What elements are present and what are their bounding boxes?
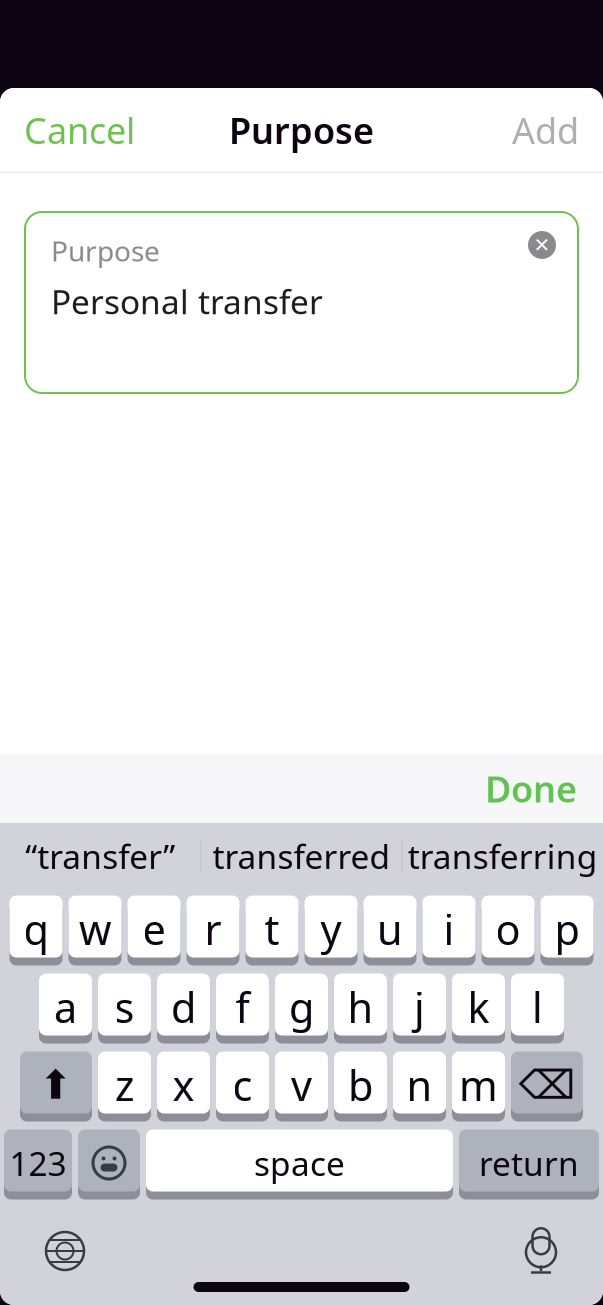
staticText: y [320,902,341,956]
button[interactable]: Delete [511,1054,583,1119]
button[interactable]: i [422,898,475,963]
staticText: space [254,1141,345,1185]
button[interactable]: r [186,898,239,963]
button[interactable]: h [334,976,387,1041]
staticText: k [467,980,489,1034]
staticText: z [115,1058,134,1112]
staticText: p [554,902,579,956]
button[interactable]: w [68,898,121,963]
staticText: n [406,1058,432,1112]
button[interactable]: z [98,1054,151,1119]
staticText: l [532,980,543,1034]
button[interactable]: Dictation [499,1223,583,1279]
staticText: t [264,902,279,956]
staticText: Personal transfer [51,279,323,323]
staticText: u [377,902,403,956]
staticText: transferred [212,834,390,878]
staticText: s [114,980,134,1034]
staticText: ⌫ [518,1062,575,1108]
staticText: b [348,1058,373,1112]
button[interactable]: Numbers [4,1132,72,1197]
staticText: Purpose [229,106,374,154]
staticText: 123 [9,1141,66,1185]
button[interactable]: x [157,1054,210,1119]
button[interactable]: l [511,976,564,1041]
staticText: g [289,980,314,1034]
staticText: i [443,902,454,956]
button[interactable]: d [157,976,210,1041]
staticText: x [172,1058,194,1112]
button[interactable]: space [146,1132,453,1197]
staticText: j [414,980,425,1034]
staticText: Add [512,106,579,154]
button[interactable]: Add [488,94,603,166]
staticText: Purpose [51,232,160,269]
button[interactable]: j [393,976,446,1041]
button[interactable]: Next keyboard [20,1223,110,1279]
staticText: m [459,1058,498,1112]
staticText: d [171,980,196,1034]
staticText: transferring [408,834,598,878]
button[interactable]: Shift [20,1054,92,1119]
staticText: o [495,902,520,956]
button[interactable]: q [9,898,62,963]
staticText: f [235,980,249,1034]
button[interactable]: transferred [201,823,402,889]
button[interactable]: n [393,1054,446,1119]
button[interactable]: Done [459,751,603,826]
button[interactable]: Return [459,1132,599,1197]
button[interactable]: “transfer” [0,823,200,889]
button[interactable]: m [452,1054,505,1119]
staticText: w [79,902,111,956]
button[interactable]: g [275,976,328,1041]
button[interactable]: t [245,898,298,963]
staticText: a [54,980,77,1034]
button[interactable]: Cancel [0,94,159,166]
button[interactable]: a [39,976,92,1041]
button[interactable]: v [275,1054,328,1119]
staticText: e [142,902,165,956]
staticText: h [347,980,373,1034]
staticText: c [232,1058,252,1112]
button[interactable]: b [334,1054,387,1119]
button[interactable]: y [304,898,357,963]
staticText: q [23,902,48,956]
button[interactable]: p [540,898,593,963]
button[interactable]: c [216,1054,269,1119]
button[interactable]: o [481,898,534,963]
staticText: “transfer” [25,834,175,878]
staticText: Cancel [24,106,135,154]
button[interactable]: Emoji [78,1132,140,1197]
staticText: Done [485,765,577,812]
staticText: return [479,1141,579,1185]
button[interactable]: s [98,976,151,1041]
staticText: r [204,902,221,956]
button[interactable]: k [452,976,505,1041]
button[interactable]: Purpose [25,212,578,393]
button[interactable]: e [127,898,180,963]
staticText: v [291,1058,312,1112]
button[interactable]: u [363,898,416,963]
button[interactable]: f [216,976,269,1041]
button[interactable]: transferring [403,823,603,889]
staticText: ⬆ [39,1062,73,1108]
staticText: ✕ [533,234,550,256]
